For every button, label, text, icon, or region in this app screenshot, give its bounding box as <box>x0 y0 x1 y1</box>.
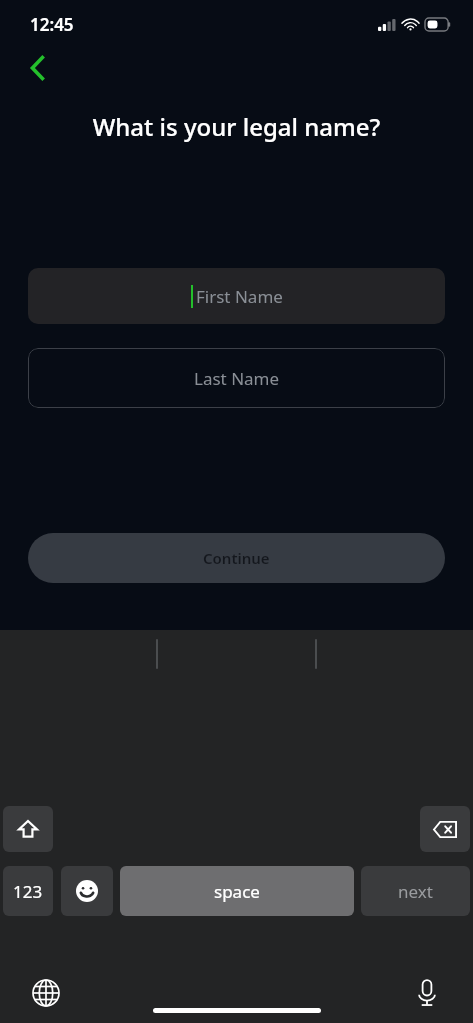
staticText: space <box>214 880 260 903</box>
staticText: next <box>398 880 433 903</box>
button[interactable]: Last Name <box>28 348 445 408</box>
staticText: 12:45 <box>30 13 74 36</box>
button[interactable]: Emoji <box>61 866 113 916</box>
staticText: First Name <box>196 285 283 308</box>
button[interactable]: Backspace <box>420 806 470 852</box>
staticText: Last Name <box>194 367 280 390</box>
button[interactable]: next <box>361 866 470 916</box>
button[interactable]: Shift <box>3 806 53 852</box>
button[interactable]: space <box>120 866 354 916</box>
button[interactable]: Change keyboard language <box>26 973 66 1013</box>
button[interactable]: Voice input <box>407 973 447 1013</box>
button[interactable]: 123 <box>3 866 53 916</box>
staticText: 123 <box>13 880 43 903</box>
staticText: Continue <box>203 548 270 568</box>
button[interactable]: First Name <box>28 268 445 324</box>
staticText: What is your legal name? <box>24 110 449 143</box>
button[interactable]: Continue <box>28 533 445 583</box>
button[interactable]: Back <box>18 48 58 88</box>
